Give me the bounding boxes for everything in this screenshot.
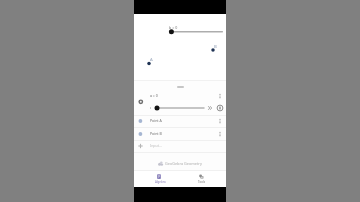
- staticText: Tools: [198, 180, 206, 184]
- button[interactable]: More options: [216, 130, 224, 138]
- staticText: Point B: [150, 131, 162, 136]
- staticText: A: [150, 57, 153, 63]
- staticText: a = 0: [150, 93, 158, 98]
- button[interactable]: Point A: [134, 115, 226, 127]
- button[interactable]: a = 0: [134, 88, 226, 115]
- button[interactable]: Algebra: [134, 171, 180, 187]
- button[interactable]: More options: [216, 117, 224, 125]
- button[interactable]: Tools: [180, 171, 226, 187]
- staticText: GeoGebra Geometry: [165, 161, 202, 166]
- button[interactable]: Slider settings: [216, 104, 224, 112]
- staticText: Algebra: [155, 180, 166, 184]
- button[interactable]: More options: [216, 92, 224, 100]
- staticText: Input…: [150, 143, 162, 148]
- button[interactable]: Input…: [134, 140, 226, 152]
- button[interactable]: Point B: [134, 128, 226, 140]
- staticText: Point A: [150, 118, 162, 123]
- staticText: b = 0: [169, 25, 178, 30]
- staticText: B: [214, 44, 217, 50]
